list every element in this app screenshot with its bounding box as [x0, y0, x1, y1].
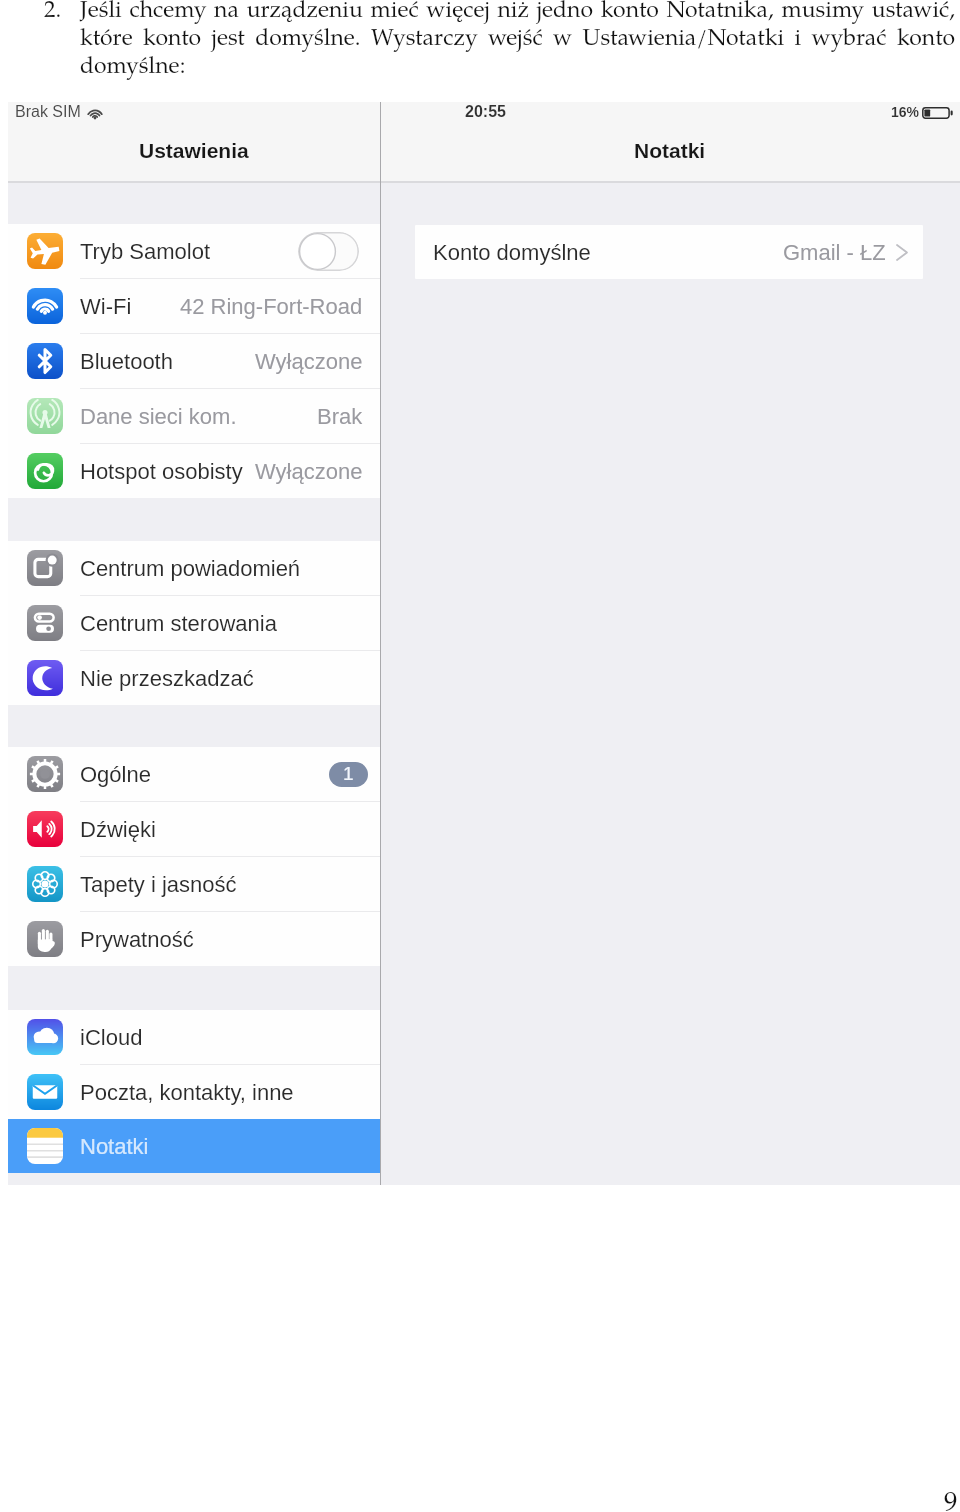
staticText: Jeśli chcemy na urządzeniu mieć więcej n…: [80, 0, 955, 80]
staticText: Notatki: [634, 139, 706, 162]
staticText: 20:55: [465, 103, 506, 121]
staticText: Hotspot osobisty: [80, 459, 243, 484]
staticText: Wyłączone: [255, 349, 363, 374]
staticText: Brak: [317, 404, 363, 429]
staticText: Wyłączone: [255, 459, 363, 484]
button[interactable]: Bluetooth: [8, 334, 380, 388]
staticText: 16%: [891, 104, 920, 120]
button[interactable]: Centrum powiadomień: [8, 541, 380, 595]
staticText: Prywatność: [80, 927, 194, 952]
staticText: Notatki: [80, 1134, 149, 1159]
staticText: Centrum sterowania: [80, 611, 277, 636]
staticText: Nie przeszkadzać: [80, 666, 254, 691]
staticText: iCloud: [80, 1025, 143, 1050]
button[interactable]: Ogólne: [8, 747, 380, 801]
button[interactable]: Tryb Samolot, wyłączony: [298, 232, 359, 271]
staticText: 2.: [44, 0, 80, 23]
staticText: Konto domyślne: [433, 240, 591, 265]
button[interactable]: Nie przeszkadzać: [8, 651, 380, 705]
staticText: Tapety i jasność: [80, 872, 237, 897]
button[interactable]: Dźwięki: [8, 802, 380, 856]
staticText: Tryb Samolot: [80, 239, 211, 264]
button[interactable]: Wi-Fi: [8, 279, 380, 333]
staticText: Brak SIM: [15, 103, 81, 121]
staticText: Centrum powiadomień: [80, 556, 301, 581]
button[interactable]: Tapety i jasność: [8, 857, 380, 911]
staticText: Ustawienia: [139, 139, 249, 162]
staticText: Dane sieci kom.: [80, 404, 237, 429]
staticText: 42 Ring-Fort-Road: [180, 294, 363, 319]
staticText: 9: [944, 1491, 958, 1512]
button[interactable]: Hotspot osobisty: [8, 444, 380, 498]
button[interactable]: Dane sieci kom.: [8, 389, 380, 443]
staticText: Wi-Fi: [80, 294, 132, 319]
staticText: Dźwięki: [80, 817, 156, 842]
button[interactable]: iCloud: [8, 1010, 380, 1064]
button[interactable]: Poczta, kontakty, inne: [8, 1065, 380, 1119]
button[interactable]: Centrum sterowania: [8, 596, 380, 650]
button[interactable]: Konto domyślne: [415, 225, 923, 279]
staticText: Poczta, kontakty, inne: [80, 1080, 294, 1105]
button[interactable]: Prywatność: [8, 912, 380, 966]
staticText: Bluetooth: [80, 349, 173, 374]
button[interactable]: Tryb Samolot: [8, 224, 380, 278]
staticText: Ogólne: [80, 762, 151, 787]
button[interactable]: Notatki: [8, 1119, 380, 1173]
staticText: Gmail - ŁZ: [783, 240, 886, 265]
staticText: 1: [343, 763, 354, 784]
